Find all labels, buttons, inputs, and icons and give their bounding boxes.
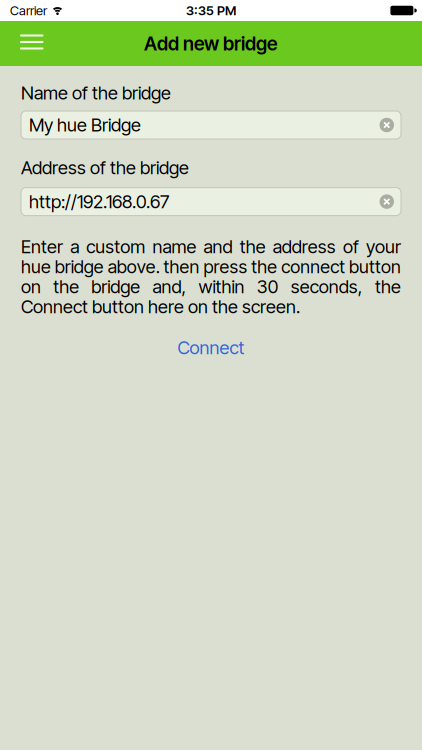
- staticText: bridge: [91, 276, 140, 298]
- staticText: the: [240, 236, 266, 258]
- staticText: on: [21, 276, 41, 298]
- staticText: the: [375, 276, 401, 298]
- staticText: above.: [108, 256, 160, 277]
- staticText: hue: [21, 256, 51, 277]
- staticText: Connect button here on the screen.: [21, 296, 300, 318]
- staticText: 3:35 PM: [186, 3, 236, 18]
- staticText: Enter: [21, 236, 63, 258]
- button[interactable]: Connect: [177, 337, 244, 359]
- staticText: connect: [281, 256, 345, 277]
- staticText: Connect: [177, 337, 244, 359]
- staticText: 30: [257, 276, 279, 298]
- staticText: within: [199, 276, 245, 298]
- staticText: custom: [86, 236, 145, 258]
- staticText: bridge: [55, 256, 104, 277]
- staticText: a: [70, 236, 79, 258]
- staticText: Carrier: [10, 3, 47, 18]
- staticText: My hue Bridge: [29, 114, 141, 136]
- staticText: and,: [152, 276, 186, 298]
- staticText: address: [273, 236, 336, 258]
- staticText: Address of the bridge: [21, 157, 189, 179]
- staticText: your: [366, 236, 401, 258]
- staticText: the: [251, 256, 277, 277]
- staticText: Name of the bridge: [21, 82, 171, 104]
- button[interactable]: Clear text: [379, 194, 394, 209]
- button[interactable]: Clear text: [379, 118, 394, 132]
- staticText: name: [152, 236, 196, 258]
- staticText: then: [164, 256, 200, 277]
- staticText: seconds,: [291, 276, 363, 298]
- staticText: button: [349, 256, 401, 277]
- staticText: of: [343, 236, 359, 258]
- staticText: http://192.168.0.67: [29, 191, 169, 213]
- staticText: Add new bridge: [144, 32, 278, 55]
- staticText: press: [203, 256, 247, 277]
- button[interactable]: Menu: [0, 24, 57, 62]
- staticText: and: [203, 236, 232, 258]
- staticText: the: [53, 276, 79, 298]
